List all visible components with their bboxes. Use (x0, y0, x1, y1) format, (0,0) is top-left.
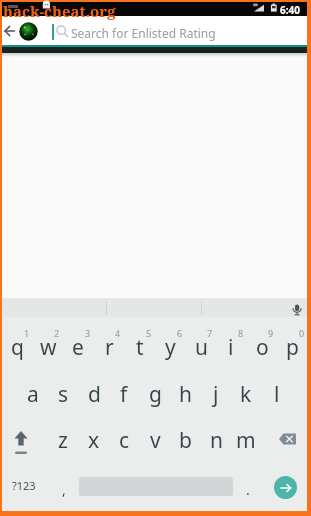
button[interactable]: g (140, 371, 170, 417)
button[interactable]: . (233, 466, 263, 512)
staticText: e (72, 333, 84, 362)
staticText: l (274, 380, 280, 409)
staticText: 2 (54, 327, 60, 339)
button[interactable]: o (247, 324, 277, 370)
staticText: s (58, 380, 69, 409)
staticText: 3 (85, 327, 91, 339)
button[interactable]: n (201, 417, 231, 463)
staticText: 5 (146, 327, 152, 339)
staticText: , (62, 480, 66, 499)
button[interactable]: m (231, 417, 261, 463)
staticText: 1 (24, 327, 30, 339)
staticText: i (228, 333, 234, 362)
staticText: 7 (207, 327, 213, 339)
staticText: 6 (177, 327, 183, 339)
button[interactable]: u (186, 324, 216, 370)
staticText: b (179, 426, 192, 455)
button[interactable]: s (48, 371, 78, 417)
button[interactable]: k (231, 371, 261, 417)
staticText: n (210, 426, 223, 455)
button[interactable]: y (155, 324, 185, 370)
staticText: 8 (238, 327, 244, 339)
button[interactable]: j (201, 371, 231, 417)
button[interactable]: i (216, 324, 246, 370)
staticText: r (105, 333, 114, 362)
button[interactable]: l (262, 371, 292, 417)
button[interactable]: ?123 (9, 462, 39, 508)
staticText: u (195, 333, 208, 362)
staticText: 9 (268, 327, 274, 339)
button[interactable]: x (79, 417, 109, 463)
button[interactable]: p (277, 324, 307, 370)
button[interactable] (272, 424, 304, 456)
staticText: k (240, 380, 252, 409)
staticText: f (120, 380, 128, 409)
staticText: q (11, 333, 24, 362)
staticText: x (88, 426, 100, 455)
staticText: g (149, 380, 162, 409)
staticText: d (88, 380, 101, 409)
button[interactable]: a (18, 371, 48, 417)
staticText: h (179, 380, 192, 409)
button[interactable] (274, 476, 297, 499)
button[interactable] (2, 16, 307, 45)
button[interactable]: f (109, 371, 139, 417)
button[interactable]: z (48, 417, 78, 463)
button[interactable]: b (170, 417, 200, 463)
staticText: 6:40 (280, 3, 300, 17)
button[interactable]: e (63, 324, 93, 370)
staticText: 4 (115, 327, 121, 339)
button[interactable]: q (2, 324, 32, 370)
staticText: hack-cheat.org (3, 1, 116, 21)
button[interactable] (6, 424, 36, 456)
staticText: y (165, 333, 176, 362)
staticText: Search for Enlisted Rating (71, 25, 216, 41)
button[interactable] (290, 302, 304, 317)
button[interactable]: v (140, 417, 170, 463)
staticText: ?123 (12, 478, 36, 493)
button[interactable]: w (33, 324, 63, 370)
staticText: c (119, 426, 130, 455)
staticText: j (213, 380, 219, 409)
button[interactable]: c (109, 417, 139, 463)
staticText: v (150, 426, 161, 455)
button[interactable]: h (170, 371, 200, 417)
staticText: z (58, 426, 68, 455)
staticText: o (256, 333, 269, 362)
staticText: p (286, 333, 299, 362)
button[interactable]: r (94, 324, 124, 370)
staticText: a (27, 380, 39, 409)
button[interactable]: d (79, 371, 109, 417)
button[interactable]: , (49, 466, 79, 512)
staticText: . (246, 480, 250, 499)
staticText: 0 (299, 327, 305, 339)
staticText: m (236, 426, 256, 455)
staticText: t (136, 333, 144, 362)
button[interactable]: t (125, 324, 155, 370)
staticText: w (40, 333, 57, 362)
